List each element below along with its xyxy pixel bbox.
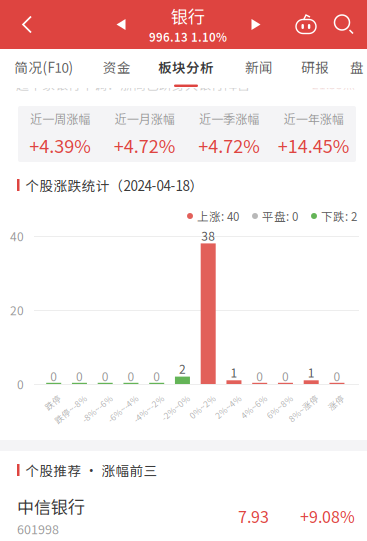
staticText: 0 [153,367,160,385]
staticText: 新闻 [245,57,273,76]
staticText: 盘 [350,57,364,76]
staticText: 601998 [17,520,59,538]
staticText: 0 [256,367,263,385]
staticText: +4.39% [29,132,91,158]
staticText: 0 [333,367,340,385]
staticText: 近一周涨幅 [30,110,90,127]
staticText: 涨停 [321,392,339,404]
staticText: +14.45% [278,132,350,158]
staticText: 个股涨跌统计（2024-04-18） [25,175,203,195]
staticText: -6%~-4% [96,392,133,404]
staticText: +4.72% [114,132,176,158]
staticText: 跌停~-8% [42,392,81,404]
staticText: 近一月涨幅 [115,110,175,127]
staticText: 0 [76,367,83,385]
staticText: 6%~8% [256,392,287,404]
staticText: 研报 [301,57,329,76]
staticText: 40 [10,227,24,245]
button[interactable]: 盘 [337,49,367,90]
staticText: 中信银行 [17,494,85,519]
staticText: 下跌: 2 [321,208,357,224]
staticText: 20 [10,301,24,319]
button[interactable]: 新闻 [231,49,287,90]
staticText: 近一年涨幅 [284,110,344,127]
staticText: 21.35点 [312,75,355,93]
staticText: 2%~4% [205,392,236,404]
button[interactable]: 上一个 [104,0,138,49]
staticText: 0 [17,375,24,393]
button[interactable]: 资金 [89,49,145,90]
staticText: 8%~涨停 [277,392,313,404]
staticText: +4.72% [198,132,260,158]
staticText: -2%~0% [150,392,184,404]
staticText: 4%~6% [231,392,262,404]
staticText: 7.93 [238,504,269,528]
staticText: 简况(F10) [14,57,73,76]
staticText: 跌停 [38,392,56,404]
staticText: 超十家银行下调：浙商已跻身大银行阵营 [16,75,250,93]
button[interactable]: 中信银行 [0,493,367,539]
button[interactable]: 返回 [5,0,49,49]
staticText: 0 [127,367,134,385]
staticText: 资金 [103,57,131,76]
staticText: 板块分析 [158,57,214,76]
staticText: 0 [102,367,109,385]
staticText: 上涨: 40 [197,208,239,224]
button[interactable]: 智能助手 [287,0,325,49]
staticText: -4%~-2% [122,392,159,404]
staticText: 平盘: 0 [262,208,298,224]
staticText: 个股推荐 · 涨幅前三 [25,460,157,480]
button[interactable]: 下一个 [239,0,273,49]
button[interactable]: 简况(F10) [4,49,84,90]
staticText: 1 [230,364,237,381]
button[interactable]: 板块分析 [149,49,223,90]
staticText: 38 [201,227,215,244]
staticText: 1 [308,364,315,381]
staticText: 银行 [171,4,205,28]
staticText: 0 [282,367,289,385]
staticText: 996.13 1.10% [149,28,227,45]
staticText: -8%~-6% [70,392,107,404]
button[interactable]: 研报 [287,49,343,90]
staticText: 0%~2% [179,392,210,404]
staticText: 2 [179,360,186,377]
staticText: 0 [50,367,57,385]
staticText: +9.08% [300,504,355,528]
staticText: 近一季涨幅 [199,110,259,127]
button[interactable]: 搜索 [325,0,363,49]
